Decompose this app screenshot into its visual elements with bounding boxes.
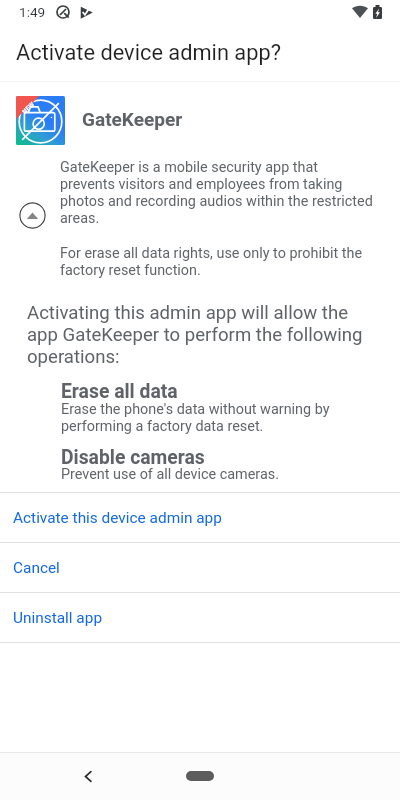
staticText: Uninstall app	[13, 609, 103, 627]
staticText: NEW	[21, 100, 35, 115]
staticText: GateKeeper is a mobile security app that…	[60, 159, 375, 227]
staticText: Erase the phone's data without warning b…	[61, 401, 361, 435]
staticText: Prevent use of all device cameras.	[61, 466, 361, 483]
staticText: GateKeeper	[82, 109, 183, 131]
staticText: operations:	[27, 346, 120, 368]
staticText: Disable cameras	[61, 447, 205, 468]
staticText: 1:49	[19, 4, 46, 20]
button[interactable]: Home	[172, 761, 228, 791]
button[interactable]: Activate this device admin app	[0, 493, 400, 542]
button[interactable]: Collapse description	[19, 202, 46, 229]
button[interactable]: Cancel	[0, 543, 400, 592]
staticText: For erase all data rights, use only to p…	[60, 245, 375, 279]
staticText: Cancel	[13, 559, 60, 577]
staticText: Activate device admin app?	[16, 39, 282, 65]
staticText: Activating this admin app will allow the	[27, 302, 349, 324]
button[interactable]: Uninstall app	[0, 593, 400, 642]
button[interactable]: Back	[68, 756, 108, 796]
staticText: Erase all data	[61, 381, 178, 402]
staticText: Activate this device admin app	[13, 509, 222, 527]
staticText: app GateKeeper to perform the following	[27, 324, 363, 346]
